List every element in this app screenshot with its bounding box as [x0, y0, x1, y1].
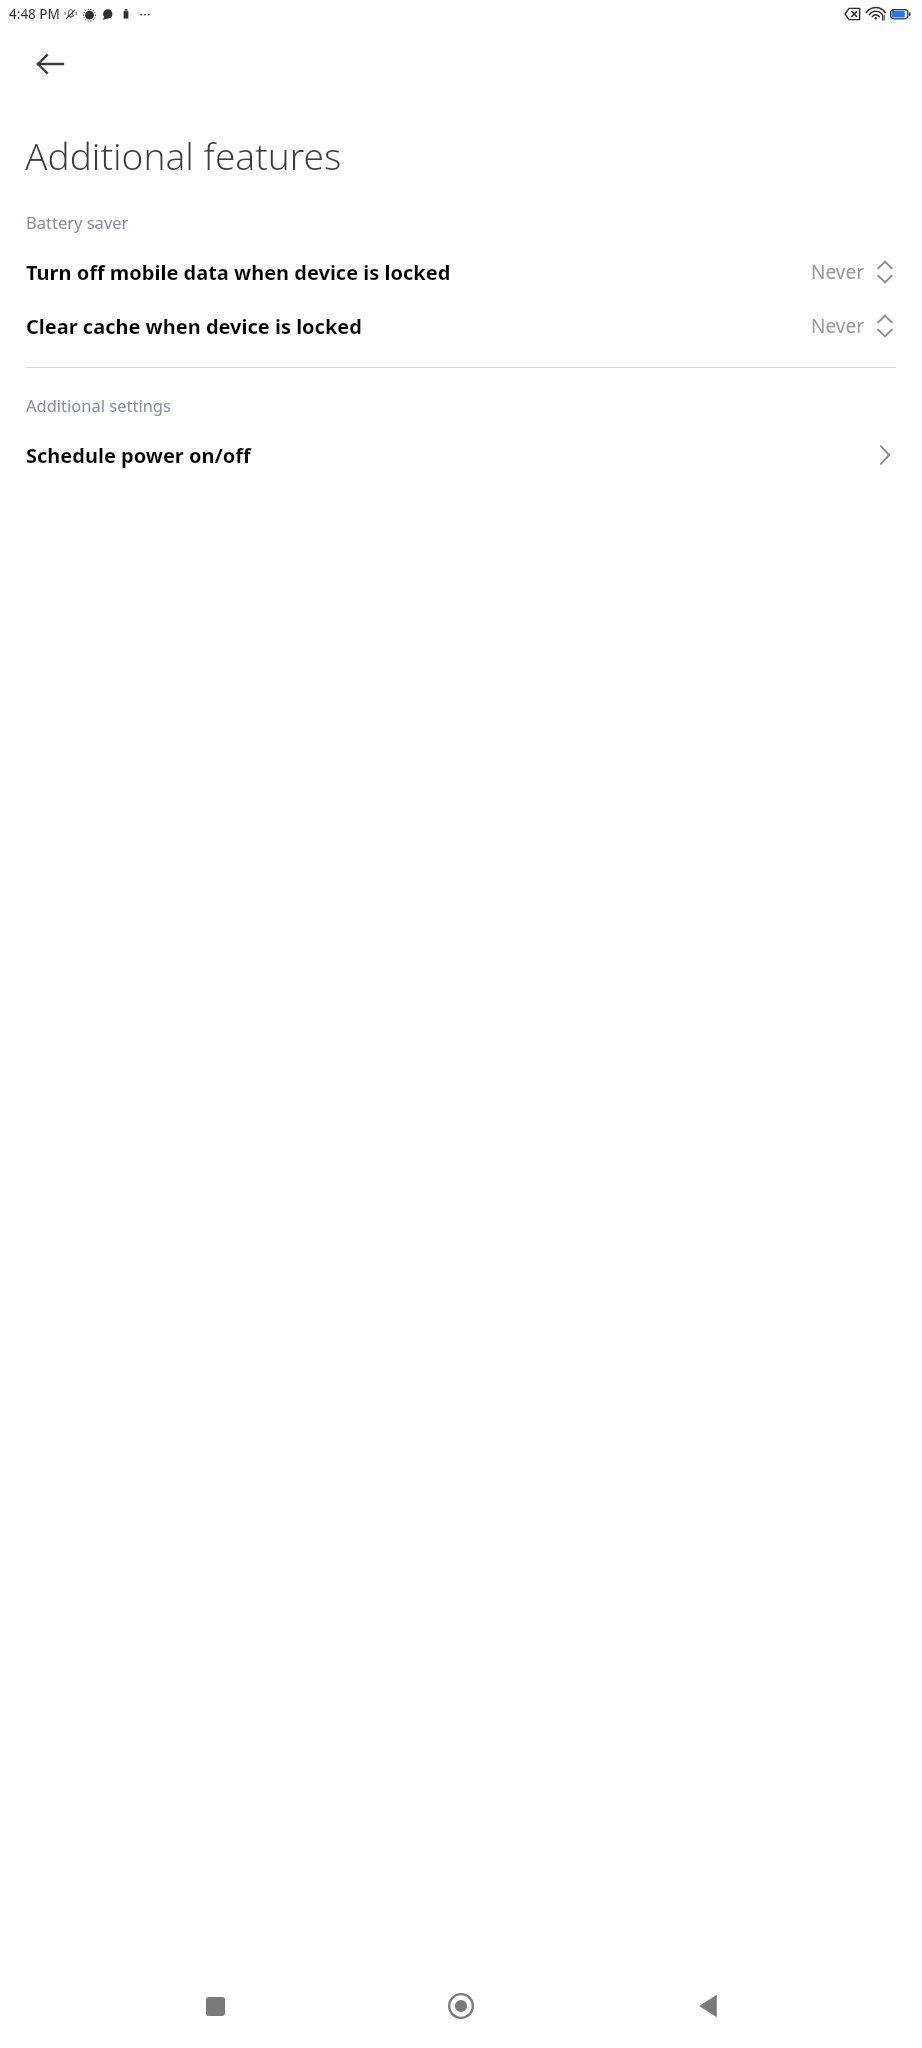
staticText: Battery saver: [26, 211, 129, 233]
staticText: Additional features: [25, 130, 342, 180]
staticText: 4:48 PM: [9, 5, 60, 23]
button[interactable]: Change value: [874, 311, 896, 341]
button[interactable]: Schedule power on/off: [0, 440, 922, 470]
staticText: Clear cache when device is locked: [26, 313, 797, 340]
staticText: Additional settings: [26, 394, 171, 416]
button[interactable]: Clear cache when device is locked: [0, 311, 922, 341]
button[interactable]: Turn off mobile data when device is lock…: [0, 257, 922, 287]
staticText: Never: [811, 259, 864, 285]
staticText: Turn off mobile data when device is lock…: [26, 259, 797, 286]
button[interactable]: Change value: [874, 257, 896, 287]
button[interactable]: Back: [26, 40, 74, 88]
staticText: Schedule power on/off: [26, 442, 860, 469]
button[interactable]: Recent apps: [183, 1974, 247, 2038]
button[interactable]: Home: [429, 1974, 493, 2038]
button[interactable]: Back: [676, 1974, 740, 2038]
staticText: Never: [811, 313, 864, 339]
